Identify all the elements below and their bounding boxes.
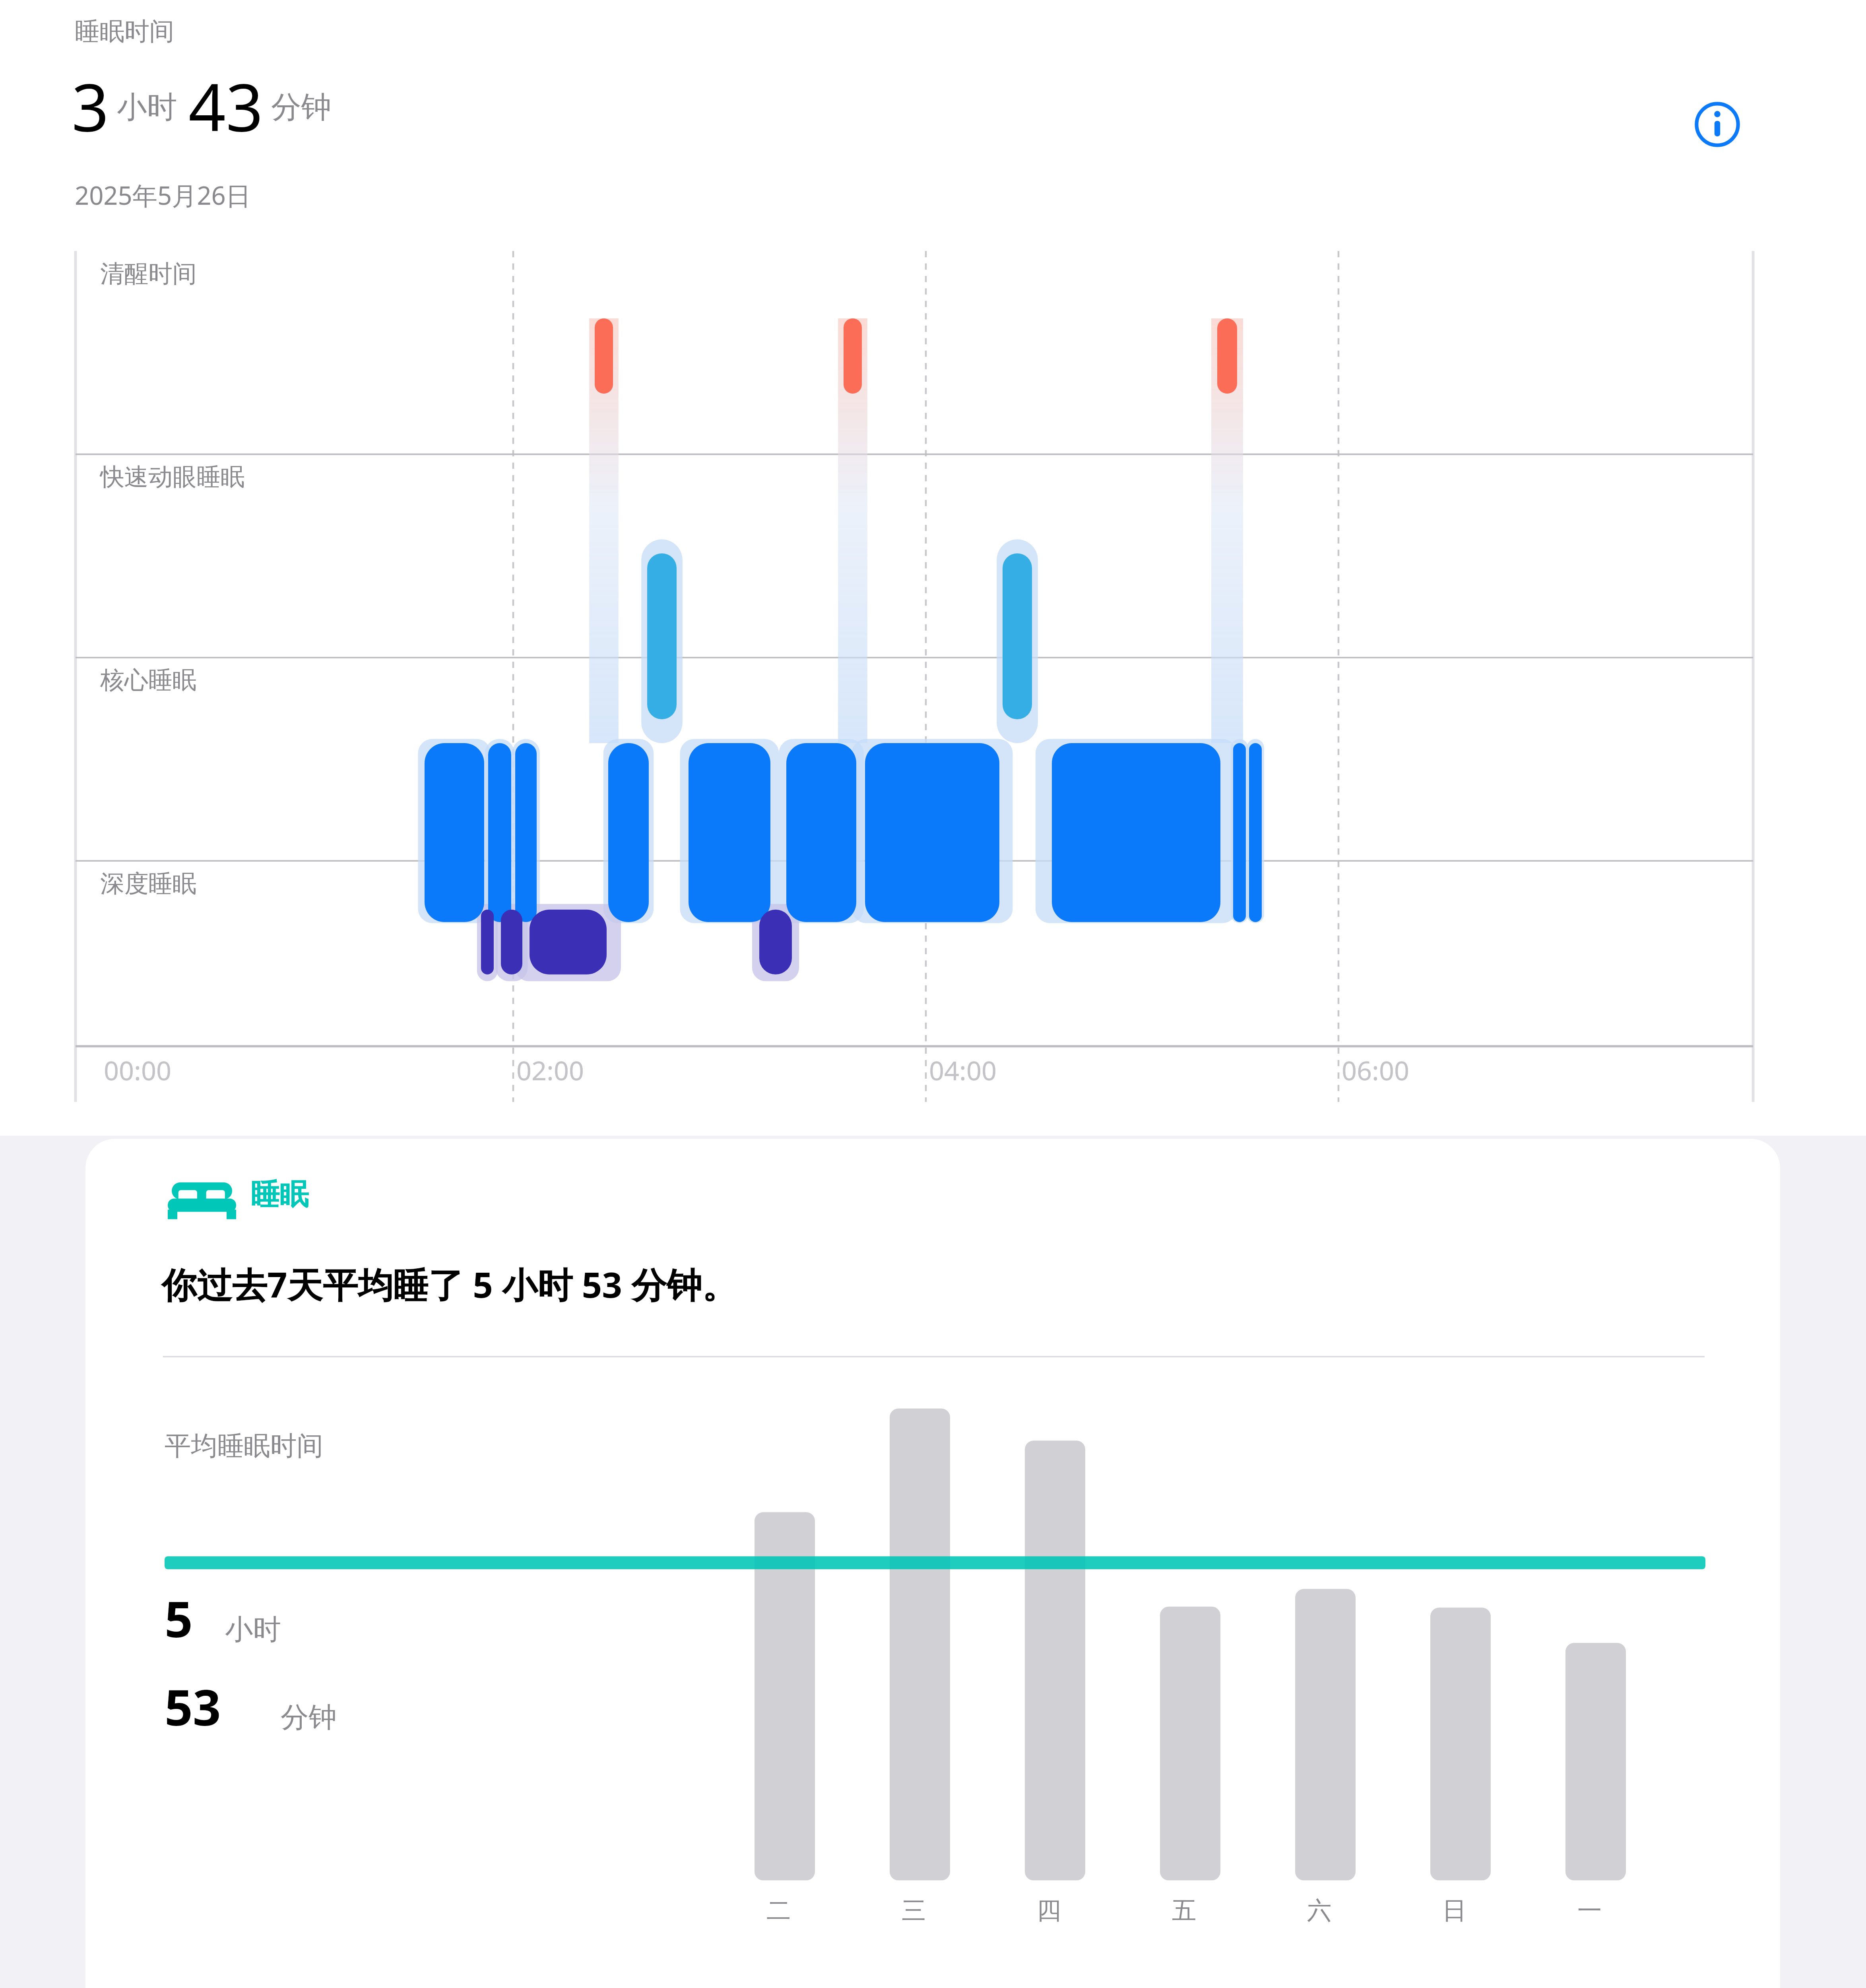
- button[interactable]: Information about sleep time: [1678, 99, 1757, 150]
